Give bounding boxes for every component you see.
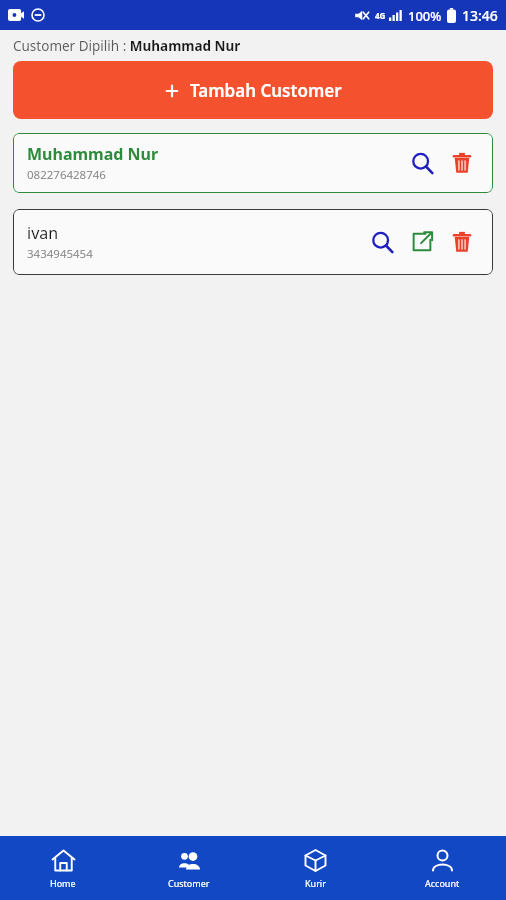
- staticText: 082276428746: [27, 167, 106, 183]
- staticText: 4G: [375, 10, 386, 21]
- button[interactable]: Home: [0, 836, 126, 900]
- button[interactable]: Customer: [126, 836, 252, 900]
- button[interactable]: Search customer: [365, 225, 399, 259]
- staticText: Customer Dipilih : Muhammad Nur: [13, 37, 241, 55]
- button[interactable]: ivan: [13, 209, 493, 275]
- button[interactable]: Tambah Customer: [13, 61, 493, 119]
- staticText: ivan: [27, 222, 59, 244]
- staticText: Customer: [168, 877, 210, 889]
- button[interactable]: Delete customer: [445, 146, 479, 180]
- staticText: 3434945454: [27, 246, 93, 262]
- button[interactable]: Account: [379, 836, 506, 900]
- staticText: Muhammad Nur: [27, 143, 159, 165]
- staticText: 100%: [408, 7, 442, 25]
- staticText: Account: [425, 877, 460, 889]
- button[interactable]: Select customer: [405, 225, 439, 259]
- staticText: 13:46: [462, 6, 498, 25]
- button[interactable]: Search customer: [405, 146, 439, 180]
- button[interactable]: Delete customer: [445, 225, 479, 259]
- staticText: Tambah Customer: [190, 79, 342, 102]
- button[interactable]: Kurir: [252, 836, 379, 900]
- staticText: Home: [50, 877, 76, 889]
- staticText: Kurir: [305, 877, 326, 889]
- button[interactable]: Muhammad Nur: [13, 133, 493, 193]
